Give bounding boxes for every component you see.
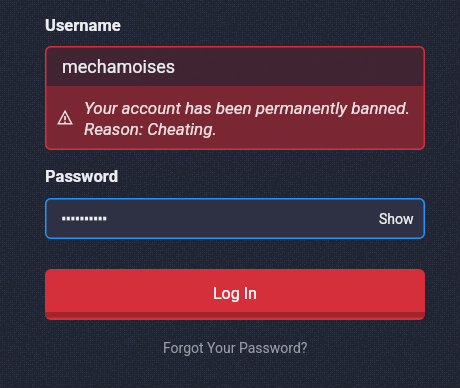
button[interactable]: Log In (45, 269, 425, 320)
staticText: Your account has been permanently banned… (84, 98, 410, 140)
button[interactable]: Show (368, 205, 425, 233)
staticText: Password (45, 167, 118, 186)
staticText: Log In (213, 284, 257, 303)
other: Warning (57, 110, 73, 126)
button[interactable]: Forgot Your Password? (157, 336, 314, 360)
staticText: Show (379, 211, 414, 227)
staticText: Forgot Your Password? (163, 340, 308, 356)
staticText: Username (45, 16, 121, 35)
button[interactable]: Show (45, 198, 425, 239)
staticText: mechamoises (62, 56, 176, 77)
button[interactable]: mechamoises (45, 46, 425, 86)
